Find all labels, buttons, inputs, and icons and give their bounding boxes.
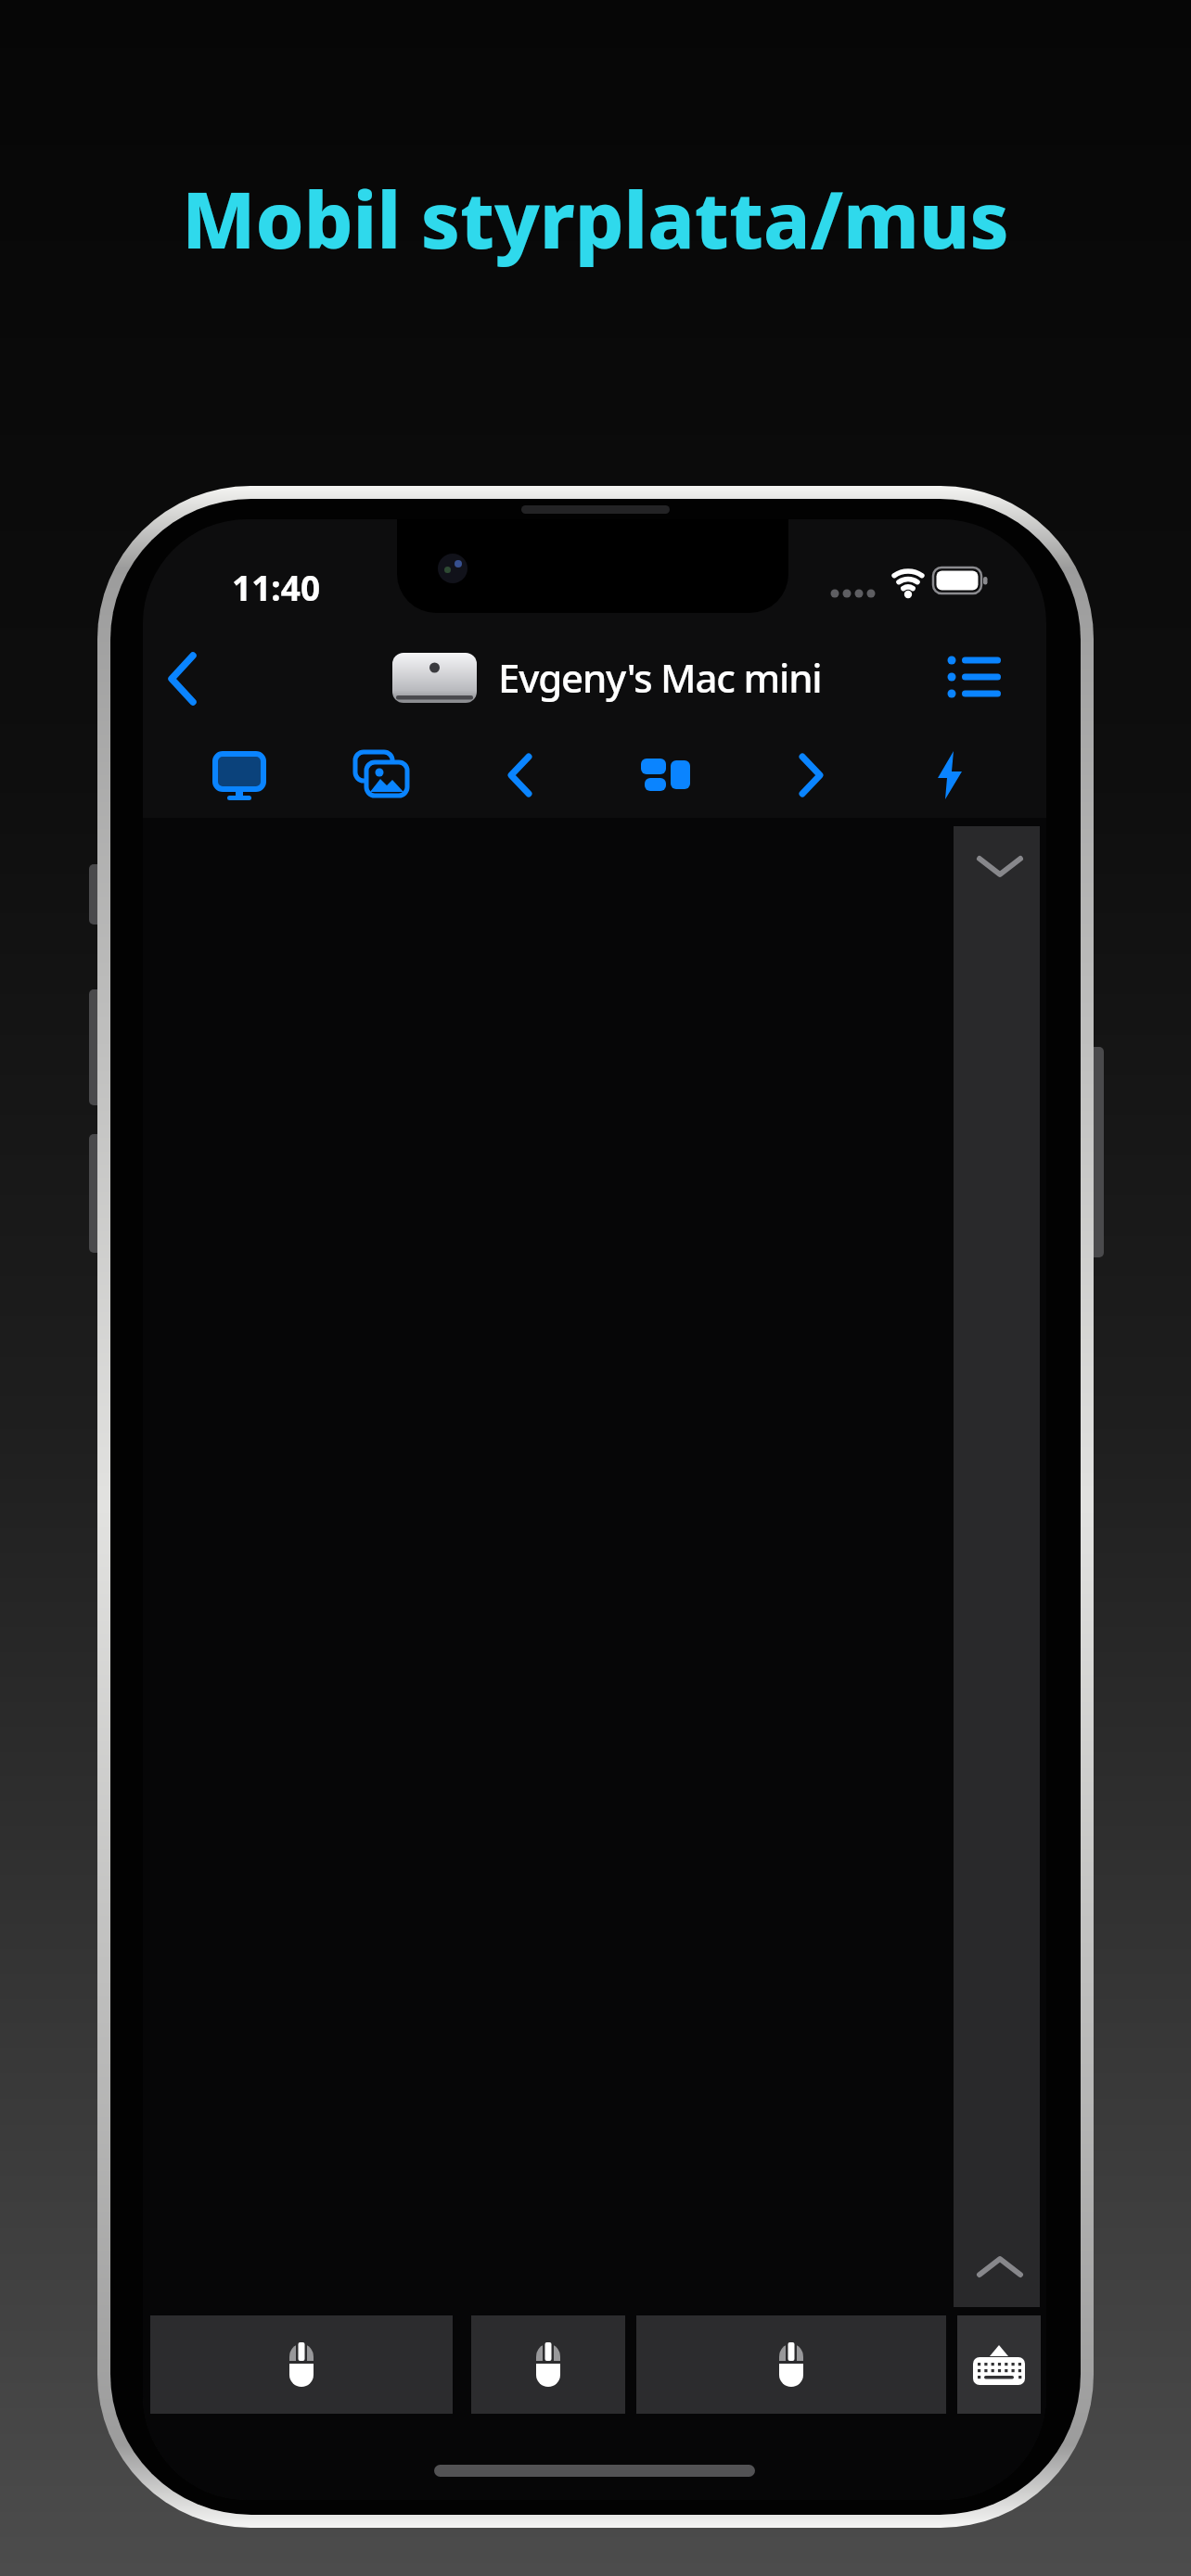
button[interactable] [352,749,411,801]
staticText: Evgeny's Mac mini [498,651,822,704]
button[interactable] [210,749,269,801]
button[interactable] [150,2315,453,2414]
button[interactable] [778,749,838,801]
button[interactable] [636,749,696,801]
button[interactable] [920,749,980,801]
staticText: 11:40 [232,564,321,610]
button[interactable] [161,649,206,708]
button[interactable] [636,2315,946,2414]
button[interactable] [471,2315,625,2414]
button[interactable] [493,749,553,801]
button[interactable] [946,653,1004,701]
button[interactable] [975,854,1025,880]
button[interactable] [957,2315,1041,2414]
staticText: Mobil styrplatta/mus [182,166,1009,271]
button[interactable] [975,2253,1025,2279]
